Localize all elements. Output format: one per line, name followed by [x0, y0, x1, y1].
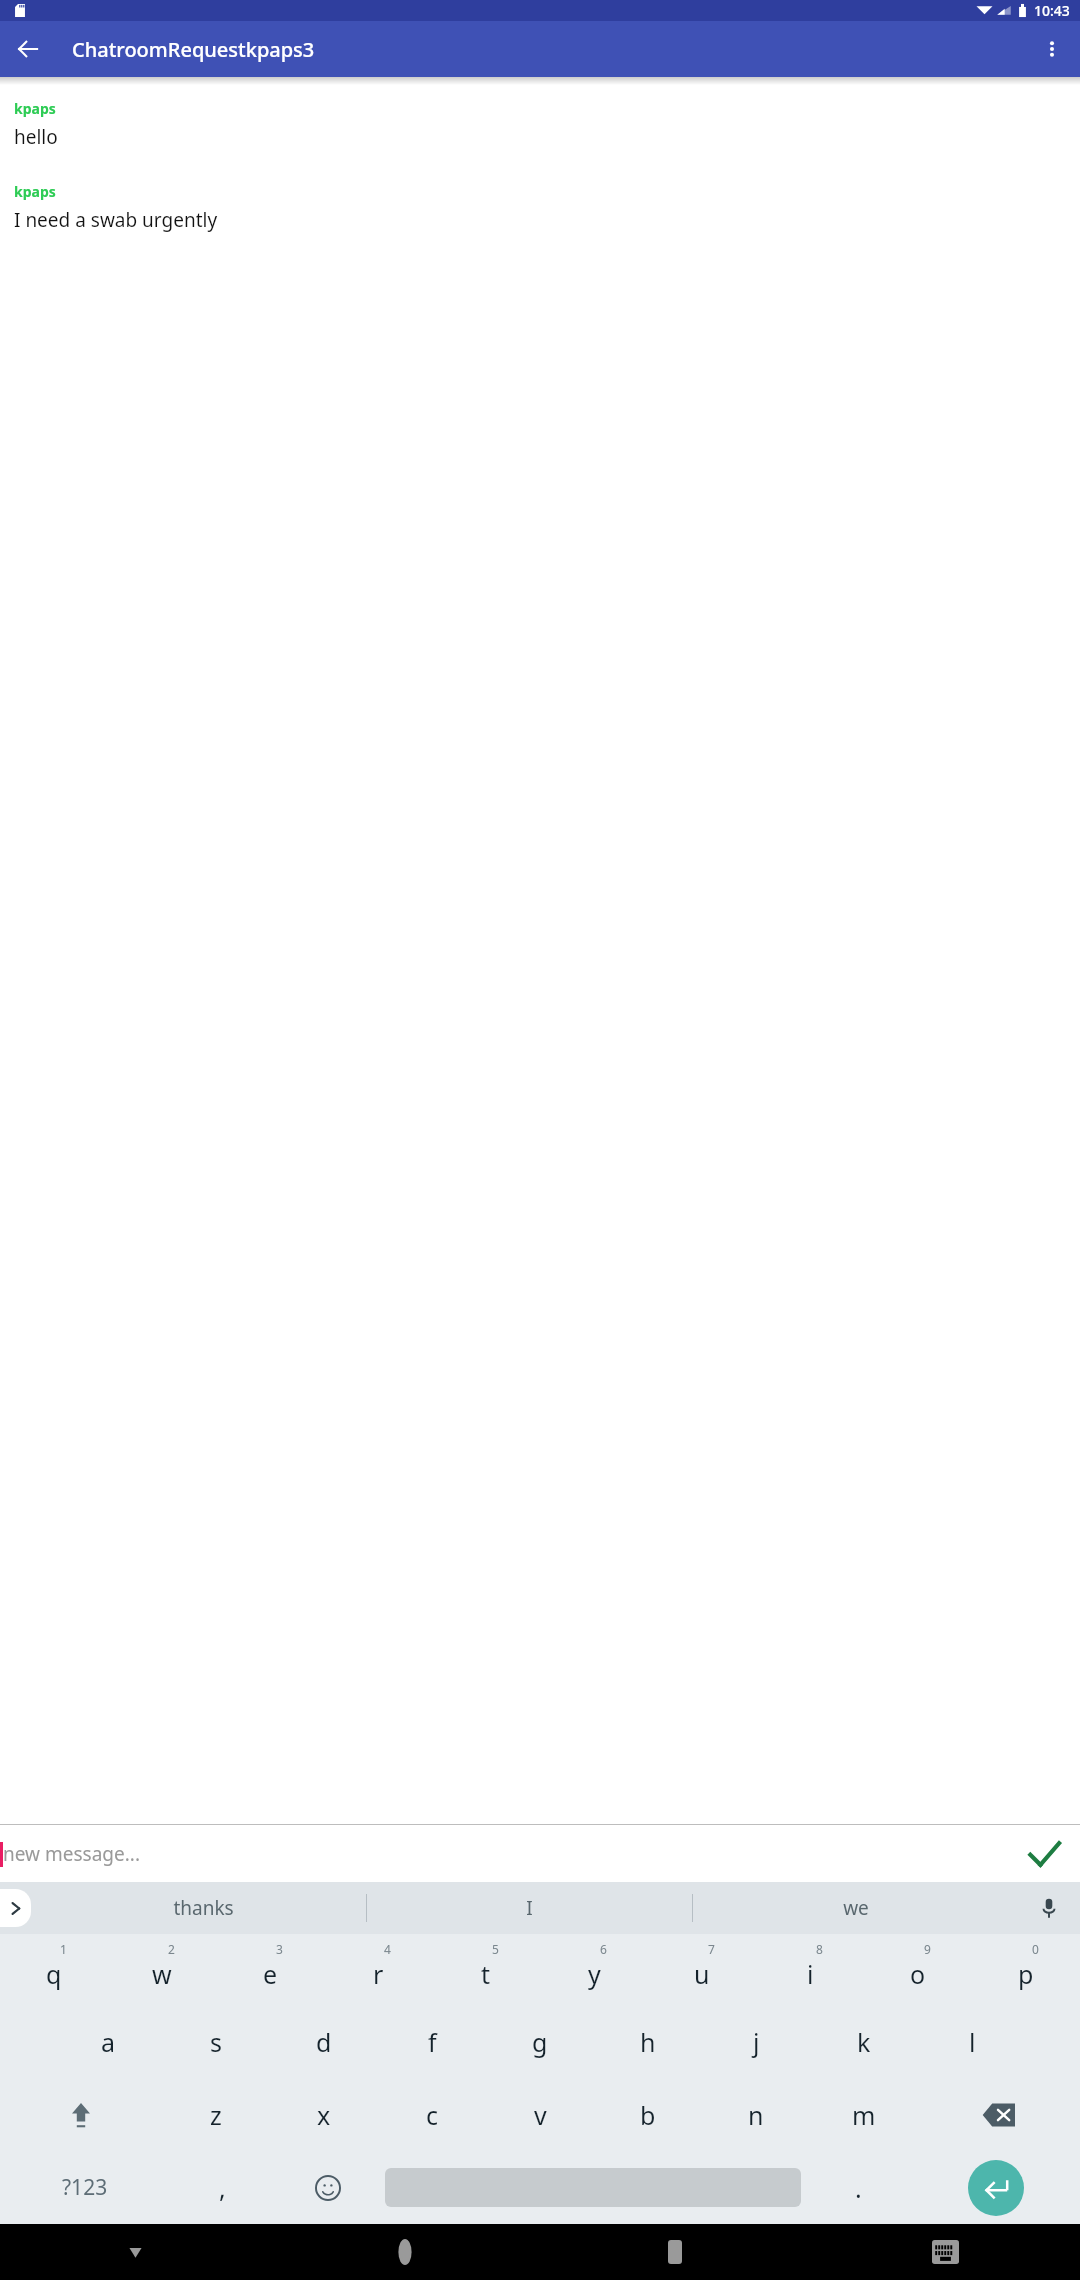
- staticText: w: [152, 1957, 172, 1991]
- staticText: 8: [816, 1941, 823, 1957]
- button[interactable]: d: [270, 2006, 378, 2078]
- staticText: j: [753, 2025, 760, 2059]
- staticText: 3: [276, 1941, 283, 1957]
- staticText: u: [694, 1957, 710, 1991]
- staticText: 7: [708, 1941, 715, 1957]
- staticText: thanks: [173, 1895, 234, 1921]
- staticText: e: [263, 1957, 278, 1991]
- button[interactable]: n: [702, 2078, 810, 2151]
- button[interactable]: ?123: [0, 2151, 169, 2224]
- button[interactable]: v: [486, 2078, 594, 2151]
- staticText: 4: [384, 1941, 391, 1957]
- button[interactable]: 3: [216, 1934, 324, 2006]
- button[interactable]: x: [270, 2078, 378, 2151]
- button[interactable]: 4: [324, 1934, 432, 2006]
- staticText: b: [640, 2098, 656, 2132]
- button[interactable]: I: [367, 1882, 692, 1934]
- staticText: d: [316, 2025, 332, 2059]
- button[interactable]: 9: [864, 1934, 972, 2006]
- button[interactable]: we: [693, 1882, 1018, 1934]
- button[interactable]: thanks: [40, 1882, 366, 1934]
- staticText: 6: [600, 1941, 607, 1957]
- staticText: I: [526, 1895, 533, 1921]
- staticText: s: [210, 2025, 222, 2059]
- staticText: h: [640, 2025, 656, 2059]
- staticText: n: [748, 2098, 764, 2132]
- button[interactable]: Shift: [0, 2078, 162, 2151]
- button[interactable]: new message...: [0, 1825, 1008, 1882]
- staticText: x: [317, 2098, 331, 2132]
- staticText: 1: [60, 1941, 67, 1957]
- button[interactable]: Enter: [911, 2151, 1080, 2224]
- button[interactable]: a: [54, 2006, 162, 2078]
- button[interactable]: g: [486, 2006, 594, 2078]
- staticText: o: [910, 1957, 926, 1991]
- button[interactable]: .: [805, 2151, 911, 2224]
- button[interactable]: Backspace: [918, 2078, 1080, 2151]
- staticText: hello: [14, 124, 58, 150]
- staticText: z: [210, 2098, 222, 2132]
- staticText: ,: [219, 2171, 226, 2205]
- button[interactable]: kpaps: [0, 97, 1080, 152]
- button[interactable]: 1: [0, 1934, 108, 2006]
- button[interactable]: l: [918, 2006, 1026, 2078]
- button[interactable]: k: [810, 2006, 918, 2078]
- button[interactable]: ,: [169, 2151, 275, 2224]
- button[interactable]: Switch keyboard: [810, 2224, 1080, 2280]
- button[interactable]: 0: [972, 1934, 1080, 2006]
- staticText: 0: [1032, 1941, 1039, 1957]
- button[interactable]: j: [702, 2006, 810, 2078]
- staticText: kpaps: [14, 182, 56, 201]
- staticText: g: [532, 2025, 548, 2059]
- staticText: i: [807, 1957, 814, 1991]
- staticText: kpaps: [14, 99, 56, 118]
- staticText: 5: [492, 1941, 499, 1957]
- button[interactable]: f: [378, 2006, 486, 2078]
- button[interactable]: z: [162, 2078, 270, 2151]
- button[interactable]: Hide keyboard: [0, 2224, 270, 2280]
- staticText: k: [857, 2025, 871, 2059]
- button[interactable]: 2: [108, 1934, 216, 2006]
- staticText: t: [481, 1957, 491, 1991]
- staticText: l: [969, 2025, 976, 2059]
- staticText: .: [855, 2171, 862, 2205]
- staticText: we: [843, 1895, 869, 1921]
- staticText: q: [46, 1957, 62, 1991]
- staticText: a: [101, 2025, 116, 2059]
- button[interactable]: s: [162, 2006, 270, 2078]
- button[interactable]: m: [810, 2078, 918, 2151]
- staticText: ChatroomRequestkpaps3: [72, 36, 315, 63]
- staticText: r: [373, 1957, 384, 1991]
- staticText: ?123: [62, 2173, 108, 2202]
- button[interactable]: 5: [432, 1934, 540, 2006]
- staticText: c: [426, 2098, 439, 2132]
- button[interactable]: Expand suggestions: [0, 1889, 31, 1927]
- staticText: new message...: [3, 1841, 140, 1867]
- staticText: f: [428, 2025, 437, 2059]
- button[interactable]: Home: [270, 2224, 540, 2280]
- button[interactable]: Recents: [540, 2224, 810, 2280]
- button[interactable]: b: [594, 2078, 702, 2151]
- button[interactable]: c: [378, 2078, 486, 2151]
- staticText: m: [852, 2098, 876, 2132]
- staticText: 2: [168, 1941, 175, 1957]
- button[interactable]: 6: [540, 1934, 648, 2006]
- button[interactable]: Emoji: [275, 2151, 381, 2224]
- staticText: 10:43: [1034, 1, 1070, 20]
- staticText: v: [534, 2098, 547, 2132]
- staticText: I need a swab urgently: [14, 207, 218, 233]
- staticText: 9: [924, 1941, 931, 1957]
- staticText: p: [1018, 1957, 1034, 1991]
- button[interactable]: Voice input: [1018, 1882, 1080, 1934]
- button[interactable]: h: [594, 2006, 702, 2078]
- button[interactable]: Send: [1008, 1825, 1080, 1882]
- button[interactable]: 7: [648, 1934, 756, 2006]
- button[interactable]: Back: [0, 21, 56, 77]
- button[interactable]: kpaps: [0, 180, 1080, 235]
- button[interactable]: 8: [756, 1934, 864, 2006]
- button[interactable]: More options: [1024, 21, 1080, 77]
- staticText: y: [588, 1957, 601, 1991]
